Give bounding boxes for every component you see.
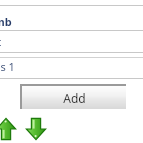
staticText: Add — [63, 90, 86, 106]
button[interactable]: Values 1 — [0, 59, 22, 73]
button[interactable]: Move up — [0, 118, 16, 140]
button[interactable]: Number: — [0, 14, 18, 28]
staticText: Number: — [0, 14, 18, 28]
staticText: Values 1 — [0, 59, 15, 73]
button[interactable]: Text — [0, 34, 20, 48]
button[interactable]: Move down — [26, 118, 46, 140]
staticText: Text — [0, 34, 2, 48]
button[interactable]: Add — [20, 84, 126, 109]
